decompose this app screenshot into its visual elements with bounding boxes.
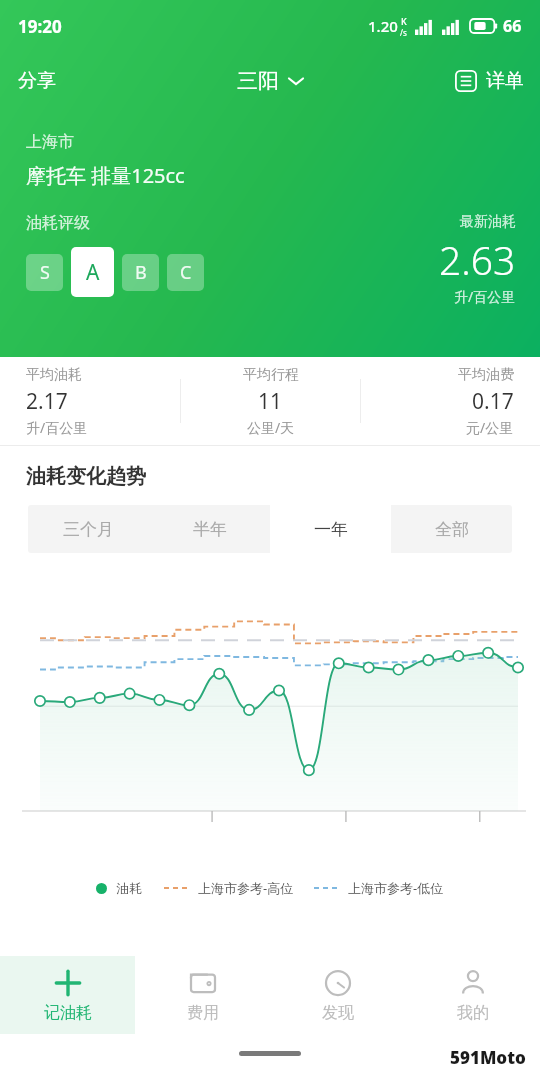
button[interactable]: 详单: [438, 61, 540, 101]
staticText: 升/百公里: [454, 287, 516, 306]
button[interactable]: 分享: [0, 61, 74, 101]
staticText: 油耗: [116, 880, 142, 896]
staticText: 元/公里: [466, 418, 514, 437]
button[interactable]: Expenses: [135, 956, 270, 1034]
staticText: 0.17: [472, 387, 514, 416]
staticText: 19:20: [18, 15, 62, 38]
button[interactable]: 三阳: [227, 62, 314, 100]
other: Add fuel record: [53, 968, 83, 998]
staticText: B: [135, 260, 147, 285]
staticText: 11: [258, 387, 283, 416]
staticText: 三阳: [237, 68, 279, 94]
staticText: 2.17: [26, 387, 68, 416]
staticText: /s: [400, 27, 407, 38]
staticText: 最新油耗: [460, 213, 516, 231]
staticText: 升/百公里: [26, 418, 88, 437]
button[interactable]: C: [167, 254, 204, 291]
button[interactable]: 平均行程: [181, 366, 360, 437]
button[interactable]: 平均油耗: [0, 366, 180, 437]
staticText: 一年: [314, 519, 348, 540]
staticText: 平均油耗: [26, 366, 82, 384]
staticText: 全部: [435, 519, 469, 540]
staticText: 详单: [486, 69, 524, 93]
button[interactable]: Discover: [270, 956, 405, 1034]
staticText: 1.20: [368, 16, 398, 36]
button[interactable]: 三个月: [28, 505, 149, 553]
staticText: A: [86, 258, 100, 287]
staticText: C: [180, 260, 192, 285]
staticText: 油耗变化趋势: [26, 464, 146, 489]
button[interactable]: Profile: [405, 956, 540, 1034]
other: Expenses: [188, 968, 218, 998]
staticText: S: [40, 260, 50, 285]
button[interactable]: B: [122, 254, 159, 291]
staticText: 记油耗: [44, 1003, 92, 1023]
button[interactable]: S: [26, 254, 63, 291]
staticText: 分享: [18, 69, 56, 93]
staticText: 发现: [322, 1003, 354, 1023]
button[interactable]: 半年: [149, 505, 270, 553]
staticText: 油耗评级: [26, 213, 90, 233]
staticText: K: [401, 15, 407, 27]
button[interactable]: 一年: [270, 505, 391, 553]
button[interactable]: 全部: [391, 505, 512, 553]
staticText: 半年: [193, 519, 227, 540]
staticText: 摩托车 排量125cc: [26, 162, 185, 189]
button[interactable]: A: [71, 247, 114, 297]
staticText: 2.63: [439, 233, 516, 286]
staticText: 上海市: [26, 132, 74, 152]
staticText: 591Moto: [450, 1046, 526, 1069]
other: Discover: [323, 968, 353, 998]
staticText: 上海市参考-高位: [198, 879, 294, 897]
other: Profile: [458, 968, 488, 998]
staticText: 费用: [187, 1003, 219, 1023]
staticText: 平均行程: [243, 366, 299, 384]
staticText: 三个月: [63, 519, 114, 540]
button[interactable]: 平均油费: [361, 366, 540, 437]
staticText: 上海市参考-低位: [348, 879, 444, 897]
staticText: 我的: [457, 1003, 489, 1023]
staticText: 66: [503, 15, 522, 37]
staticText: 公里/天: [247, 418, 295, 437]
button[interactable]: Add fuel record: [0, 956, 135, 1034]
staticText: 平均油费: [458, 366, 514, 384]
